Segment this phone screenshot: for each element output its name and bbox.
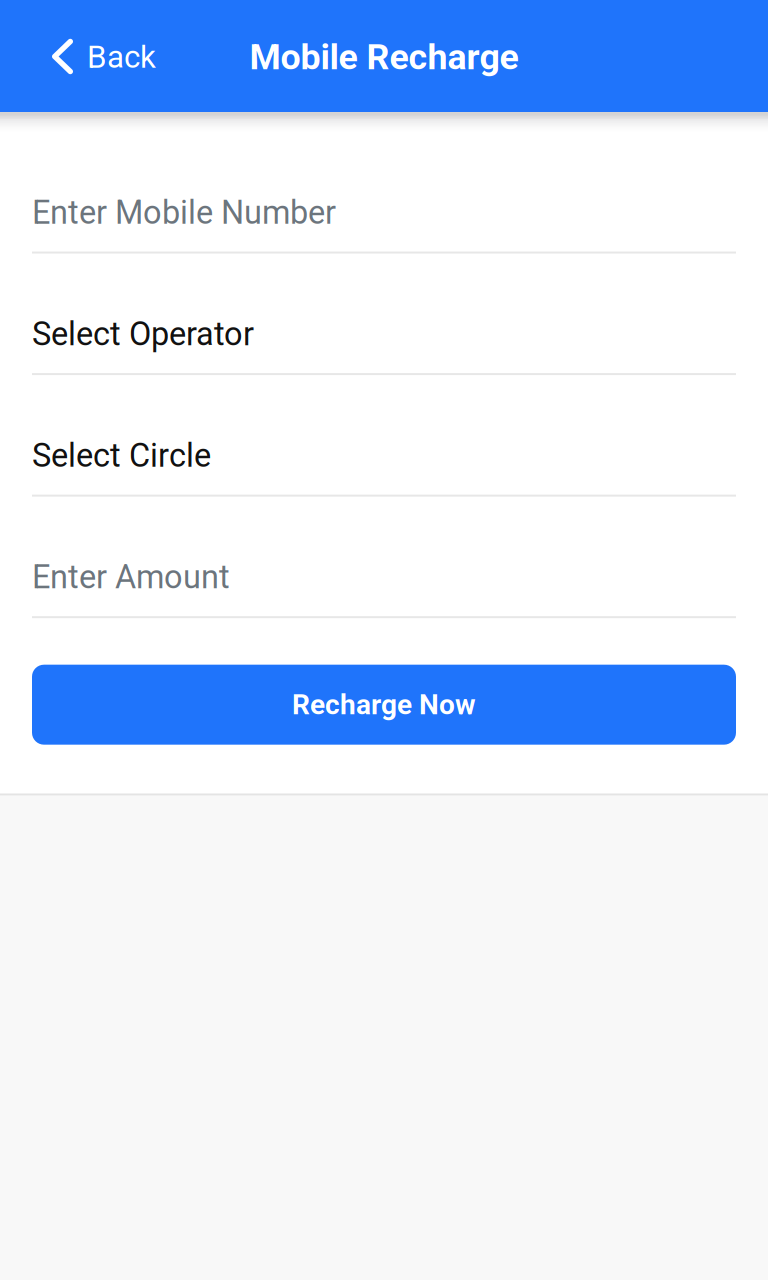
button[interactable]: Select Operator <box>32 253 736 375</box>
button[interactable]: Back <box>0 0 180 112</box>
staticText: Select Operator <box>32 315 254 353</box>
button[interactable]: Recharge Now <box>32 665 736 745</box>
staticText: Recharge Now <box>292 688 476 721</box>
button[interactable]: Select Circle <box>32 375 736 497</box>
staticText: Enter Amount <box>32 558 230 596</box>
staticText: Select Circle <box>32 437 211 475</box>
staticText: Back <box>87 39 156 75</box>
button[interactable]: Enter Mobile Number <box>32 132 736 253</box>
staticText: Mobile Recharge <box>249 36 518 78</box>
staticText: Enter Mobile Number <box>32 194 336 232</box>
button[interactable]: Enter Amount <box>32 497 736 618</box>
